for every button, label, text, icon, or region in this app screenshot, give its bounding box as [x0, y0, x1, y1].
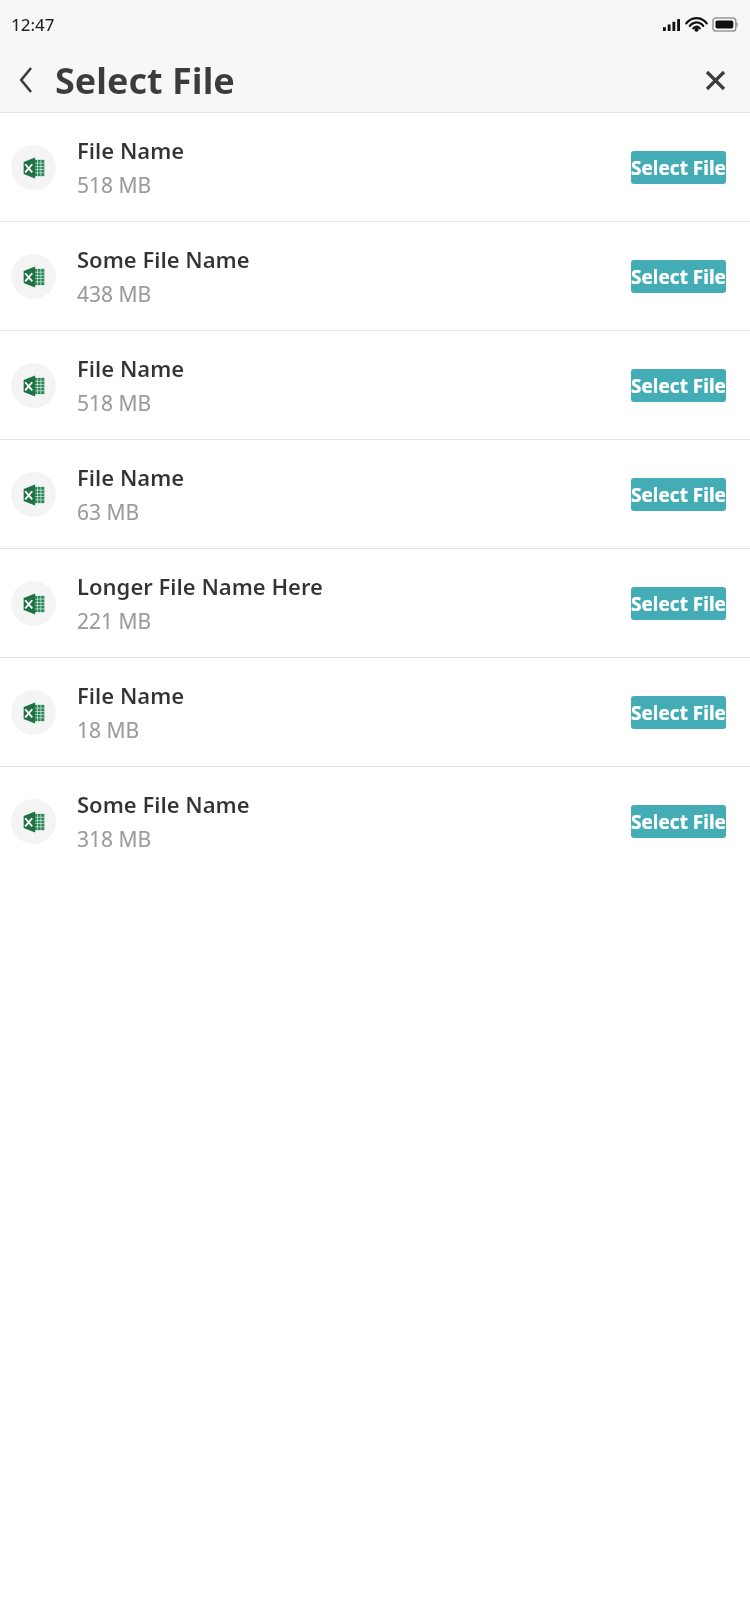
button[interactable]: File Name: [0, 331, 750, 439]
staticText: File Name: [77, 462, 185, 492]
button[interactable]: Select File: [631, 587, 726, 620]
button[interactable]: Select File: [631, 696, 726, 729]
button[interactable]: Select File: [631, 478, 726, 511]
staticText: Select File: [631, 700, 726, 726]
staticText: Select File: [631, 373, 726, 399]
staticText: Select File: [631, 809, 726, 835]
button[interactable]: Select File: [631, 369, 726, 402]
staticText: Select File: [55, 56, 235, 105]
button[interactable]: Some File Name: [0, 222, 750, 330]
staticText: Select File: [631, 155, 726, 181]
staticText: 518 MB: [77, 389, 152, 418]
button[interactable]: Select File: [631, 151, 726, 184]
staticText: Some File Name: [77, 244, 250, 274]
staticText: File Name: [77, 135, 185, 165]
staticText: Select File: [631, 264, 726, 290]
button[interactable]: File Name: [0, 440, 750, 548]
staticText: 221 MB: [77, 607, 152, 636]
button[interactable]: File Name: [0, 113, 750, 221]
button[interactable]: Some File Name: [0, 767, 750, 875]
staticText: Longer File Name Here: [77, 571, 323, 601]
staticText: 518 MB: [77, 171, 152, 200]
button[interactable]: File Name: [0, 658, 750, 766]
button[interactable]: Longer File Name Here: [0, 549, 750, 657]
button[interactable]: Select File: [631, 260, 726, 293]
staticText: File Name: [77, 680, 185, 710]
staticText: 63 MB: [77, 498, 140, 527]
staticText: Some File Name: [77, 789, 250, 819]
staticText: Select File: [631, 591, 726, 617]
staticText: 318 MB: [77, 825, 152, 854]
button[interactable]: Back: [0, 54, 52, 106]
staticText: 438 MB: [77, 280, 152, 309]
staticText: 12:47: [11, 13, 55, 36]
staticText: 18 MB: [77, 716, 140, 745]
staticText: Select File: [631, 482, 726, 508]
staticText: File Name: [77, 353, 185, 383]
button[interactable]: Select File: [631, 805, 726, 838]
button[interactable]: Close: [689, 54, 741, 106]
